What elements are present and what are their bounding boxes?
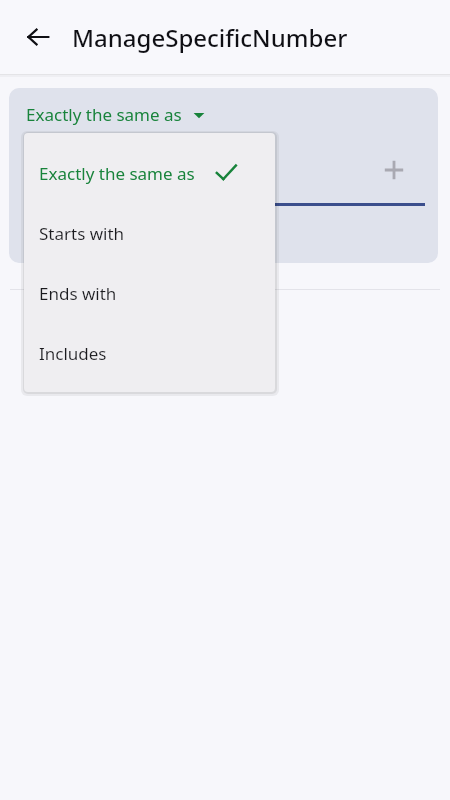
- button[interactable]: Ends with: [24, 263, 275, 323]
- button[interactable]: Starts with: [24, 203, 275, 263]
- button[interactable]: Exactly the same as: [24, 100, 207, 129]
- staticText: Includes: [39, 342, 107, 365]
- button[interactable]: Exactly the same as: [24, 143, 275, 203]
- staticText: Starts with: [39, 222, 125, 245]
- button[interactable]: Add number: [374, 150, 414, 190]
- staticText: Exactly the same as: [26, 103, 182, 126]
- staticText: ManageSpecificNumber: [72, 21, 348, 54]
- staticText: Ends with: [39, 282, 117, 305]
- button[interactable]: Includes: [24, 323, 275, 383]
- button[interactable]: Back: [14, 13, 62, 61]
- staticText: Exactly the same as: [39, 162, 195, 185]
